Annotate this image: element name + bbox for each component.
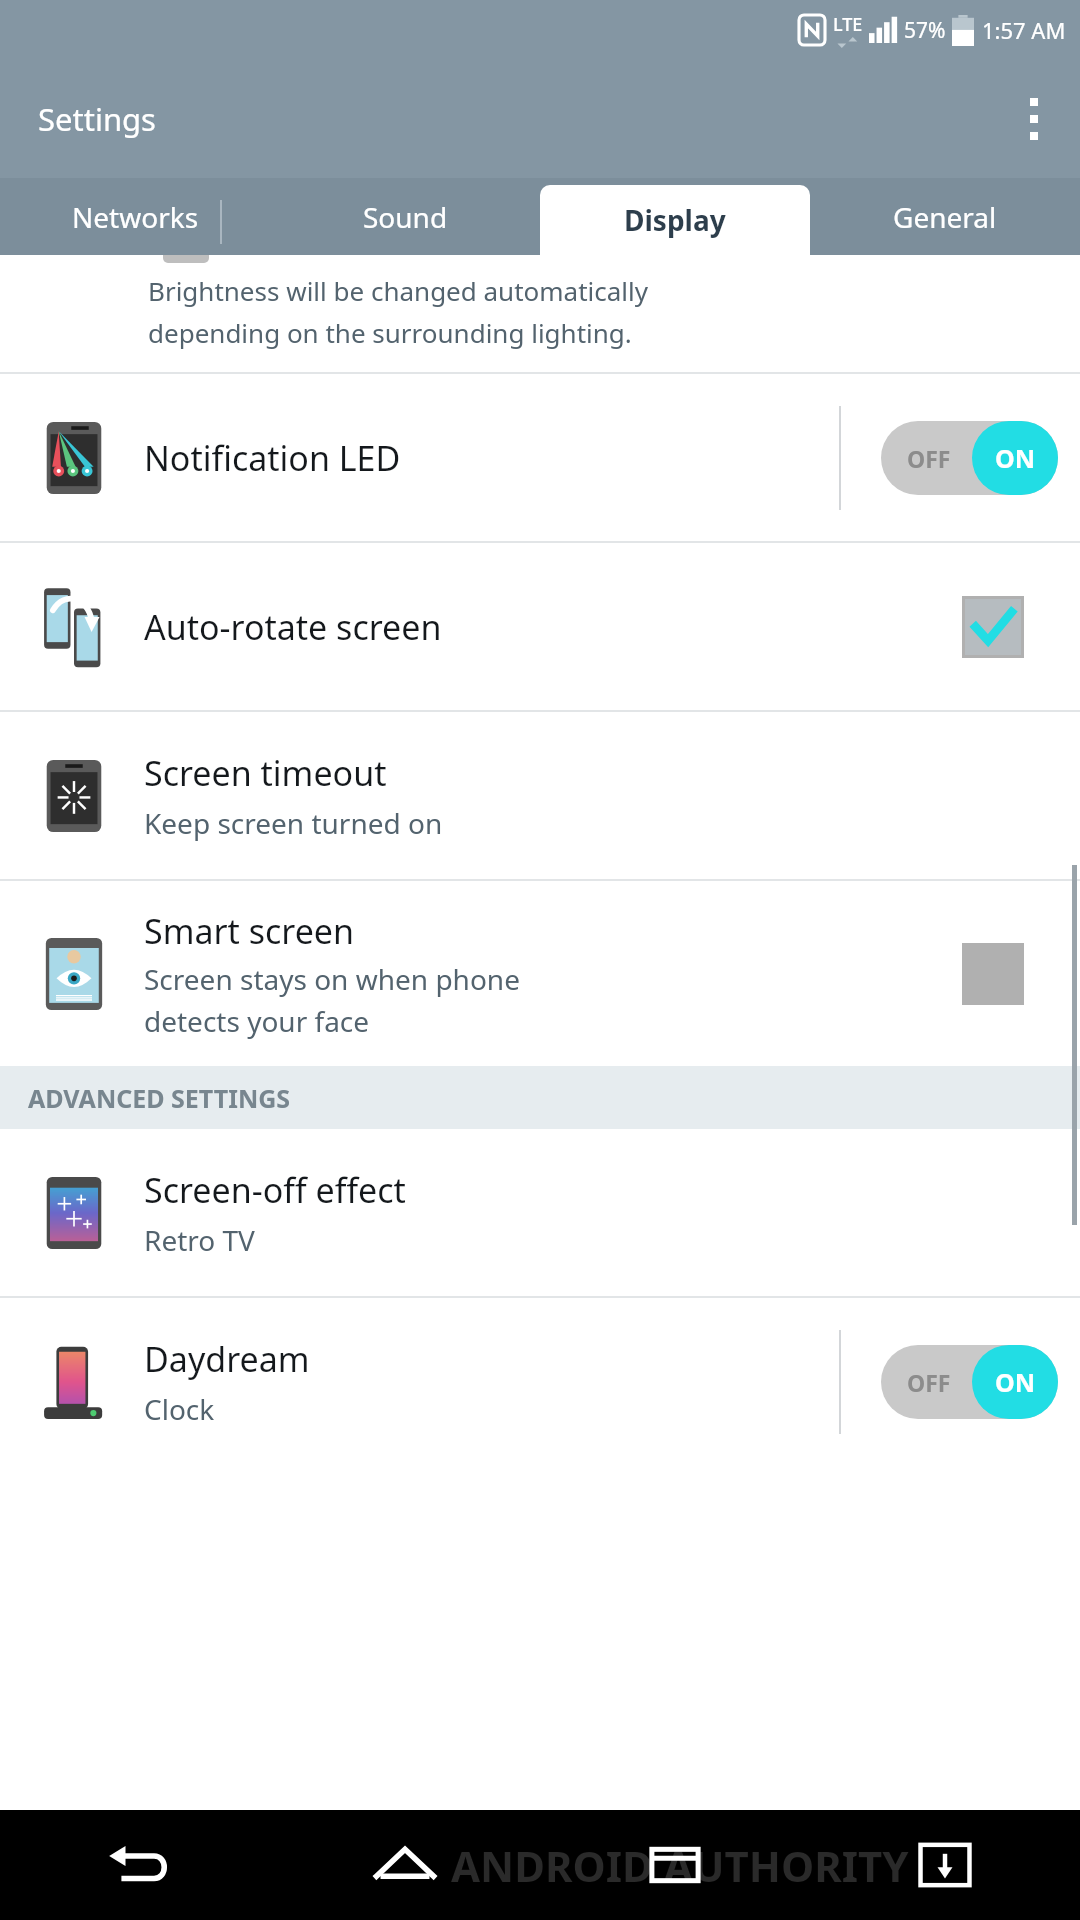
staticText: Clock bbox=[144, 1390, 215, 1428]
staticText: Daydream bbox=[144, 1336, 310, 1382]
button[interactable]: Networks bbox=[0, 178, 270, 255]
staticText: Smart screen bbox=[144, 908, 355, 954]
staticText: ANDROID AUTHORITY bbox=[451, 1837, 909, 1894]
button[interactable]: Recent apps bbox=[540, 1810, 810, 1920]
staticText: ADVANCED SETTINGS bbox=[28, 1081, 291, 1115]
button[interactable]: Auto-rotate screen bbox=[0, 543, 1080, 710]
staticText: detects your face bbox=[144, 1002, 370, 1040]
staticText: Retro TV bbox=[144, 1221, 255, 1259]
staticText: LTE bbox=[833, 12, 863, 37]
staticText: ON bbox=[995, 1365, 1036, 1399]
button[interactable]: Toggle on bbox=[881, 1345, 1058, 1419]
staticText: ON bbox=[995, 441, 1036, 475]
staticText: Sound bbox=[363, 198, 448, 236]
staticText: Brightness will be changed automatically bbox=[148, 273, 649, 308]
button[interactable]: Checked bbox=[962, 596, 1024, 658]
staticText: Auto-rotate screen bbox=[144, 604, 962, 650]
staticText: OFF bbox=[907, 443, 951, 474]
button[interactable]: General bbox=[810, 178, 1080, 255]
staticText: OFF bbox=[907, 1367, 951, 1398]
button[interactable]: Back bbox=[0, 1810, 270, 1920]
button[interactable]: Screen timeout bbox=[0, 712, 1080, 879]
button[interactable]: Smart screen bbox=[0, 881, 1080, 1066]
button[interactable]: Capture bbox=[810, 1810, 1080, 1920]
staticText: 57% bbox=[904, 16, 946, 45]
button[interactable]: Home bbox=[270, 1810, 540, 1920]
staticText: General bbox=[893, 198, 997, 236]
button[interactable]: Screen-off effect bbox=[0, 1129, 1080, 1296]
button[interactable]: Display bbox=[540, 185, 810, 255]
button[interactable]: More options bbox=[1006, 91, 1062, 147]
button[interactable]: Notification LED bbox=[0, 374, 1080, 541]
staticText: 1:57 AM bbox=[982, 15, 1066, 45]
staticText: Screen stays on when phone bbox=[144, 960, 520, 998]
staticText: Screen timeout bbox=[144, 750, 387, 796]
staticText: Keep screen turned on bbox=[144, 804, 443, 842]
button[interactable]: Toggle on bbox=[881, 421, 1058, 495]
staticText: Display bbox=[624, 201, 726, 239]
staticText: depending on the surrounding lighting. bbox=[148, 315, 632, 350]
button[interactable]: Sound bbox=[270, 178, 540, 255]
staticText: Settings bbox=[38, 98, 156, 140]
button[interactable]: Daydream bbox=[0, 1298, 1080, 1465]
staticText: Notification LED bbox=[144, 435, 839, 481]
staticText: Screen-off effect bbox=[144, 1167, 406, 1213]
staticText: Networks bbox=[72, 198, 199, 236]
